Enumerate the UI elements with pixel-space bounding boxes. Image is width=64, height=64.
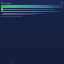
button[interactable] (1, 14, 35, 15)
button[interactable] (3, 7, 63, 8)
button[interactable]: Menu (1, 2, 3, 4)
button[interactable] (1, 5, 63, 7)
button[interactable]: Profile (1, 7, 3, 12)
button[interactable]: Home (0, 61, 22, 64)
button[interactable]: Search (22, 61, 43, 64)
button[interactable] (3, 13, 45, 14)
button[interactable] (3, 9, 54, 10)
button[interactable]: Profile (43, 61, 64, 64)
button[interactable] (3, 11, 60, 12)
